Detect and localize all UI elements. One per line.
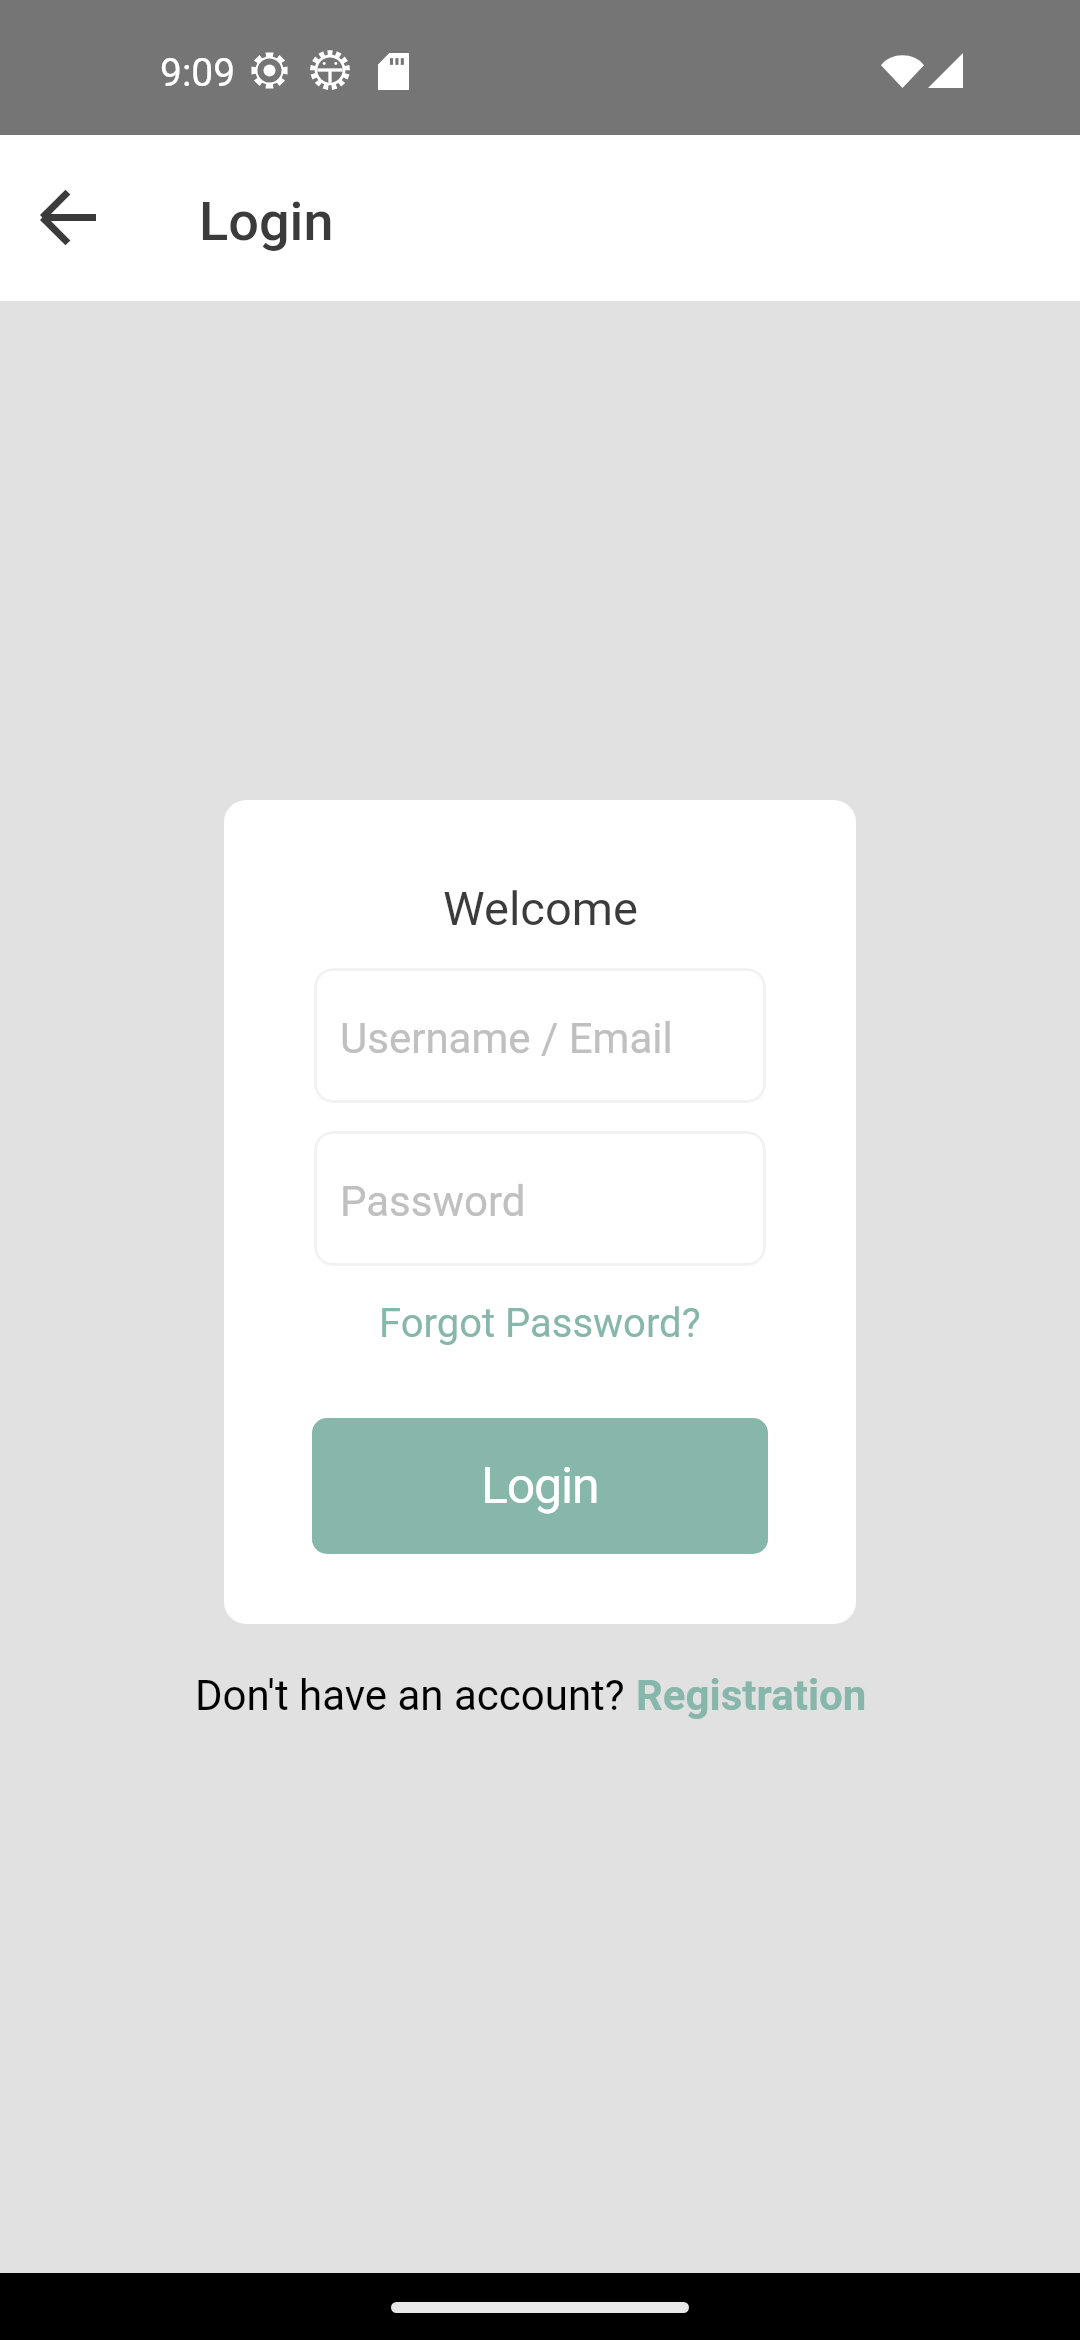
button[interactable]: Password: [314, 1131, 766, 1266]
button[interactable]: Forgot Password?: [369, 1292, 711, 1355]
staticText: Welcome: [443, 881, 638, 936]
staticText: Registration: [636, 1671, 867, 1720]
staticText: Forgot Password?: [379, 1300, 701, 1347]
staticText: Username / Email: [340, 1014, 673, 1063]
button[interactable]: Login: [312, 1418, 768, 1554]
button[interactable]: Username / Email: [314, 968, 766, 1103]
staticText: Login: [481, 1457, 599, 1516]
staticText: Password: [340, 1177, 526, 1226]
button[interactable]: Registration: [636, 1671, 867, 1720]
staticText: Don't have an account?: [195, 1671, 625, 1720]
button[interactable]: Back: [12, 162, 123, 273]
staticText: Login: [199, 190, 334, 253]
staticText: 9:09: [160, 50, 236, 96]
